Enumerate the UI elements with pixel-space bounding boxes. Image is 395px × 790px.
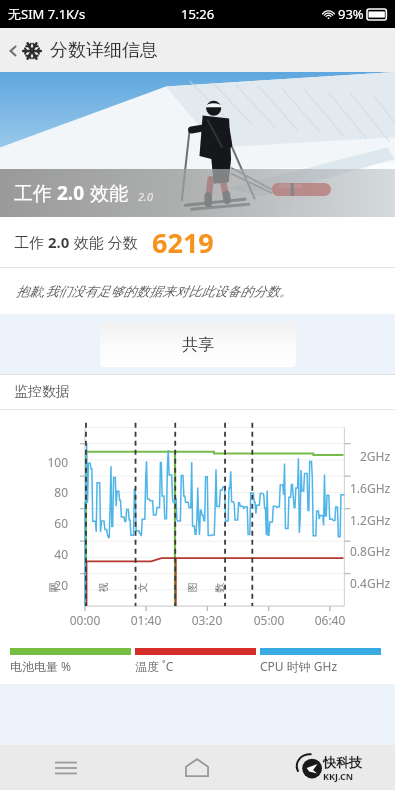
- staticText: 60: [6, 515, 68, 531]
- staticText: 01:40: [127, 612, 165, 628]
- staticText: 共享: [182, 335, 214, 355]
- button[interactable]: 共享: [100, 322, 296, 367]
- staticText: 监控数据: [14, 383, 70, 401]
- staticText: 0.8GHz: [350, 543, 391, 559]
- staticText: CPU 时钟 GHz: [260, 658, 338, 674]
- staticText: 效能 分数: [70, 232, 138, 252]
- staticText: 温度 ˚C: [135, 658, 174, 674]
- staticText: 数据操作: [212, 582, 225, 592]
- staticText: 无SIM 7.1K/s: [8, 5, 86, 23]
- staticText: 2.0: [57, 180, 85, 206]
- staticText: 03:20: [188, 612, 226, 628]
- staticText: 2.0: [138, 189, 153, 204]
- staticText: 快科技: [323, 754, 362, 770]
- staticText: 2.0: [48, 232, 70, 252]
- staticText: 文档编写 2.0: [135, 582, 148, 592]
- staticText: 视频编辑: [96, 582, 109, 592]
- staticText: 1.2GHz: [350, 512, 391, 528]
- staticText: 电池电量 %: [10, 658, 72, 674]
- staticText: 15:26: [181, 5, 215, 23]
- staticText: KKJ.CN: [323, 770, 354, 782]
- staticText: 05:00: [250, 612, 288, 628]
- staticText: 工作: [14, 180, 57, 206]
- button[interactable]: Home: [131, 745, 263, 790]
- staticText: 06:40: [311, 612, 349, 628]
- staticText: 80: [6, 484, 68, 500]
- staticText: 00:00: [66, 612, 104, 628]
- staticText: 0.4GHz: [350, 575, 391, 591]
- staticText: 分数详细信息: [50, 39, 158, 62]
- staticText: 100: [6, 454, 68, 470]
- staticText: 40: [6, 546, 68, 562]
- staticText: 2GHz: [360, 448, 391, 464]
- staticText: 1.6GHz: [350, 480, 391, 496]
- button[interactable]: Menu: [0, 745, 131, 790]
- staticText: 抱歉,我们没有足够的数据来对比此设备的分数。: [16, 282, 293, 300]
- button[interactable]: Back: [0, 28, 395, 72]
- staticText: 工作: [14, 232, 48, 252]
- staticText: 网络浏览 2.0: [46, 582, 59, 592]
- staticText: 图片编辑 2.0: [185, 582, 198, 592]
- staticText: 效能: [85, 180, 128, 206]
- staticText: 20: [6, 577, 68, 593]
- staticText: 6219: [152, 224, 214, 261]
- other: Back: [6, 44, 20, 58]
- staticText: 93%: [338, 5, 364, 23]
